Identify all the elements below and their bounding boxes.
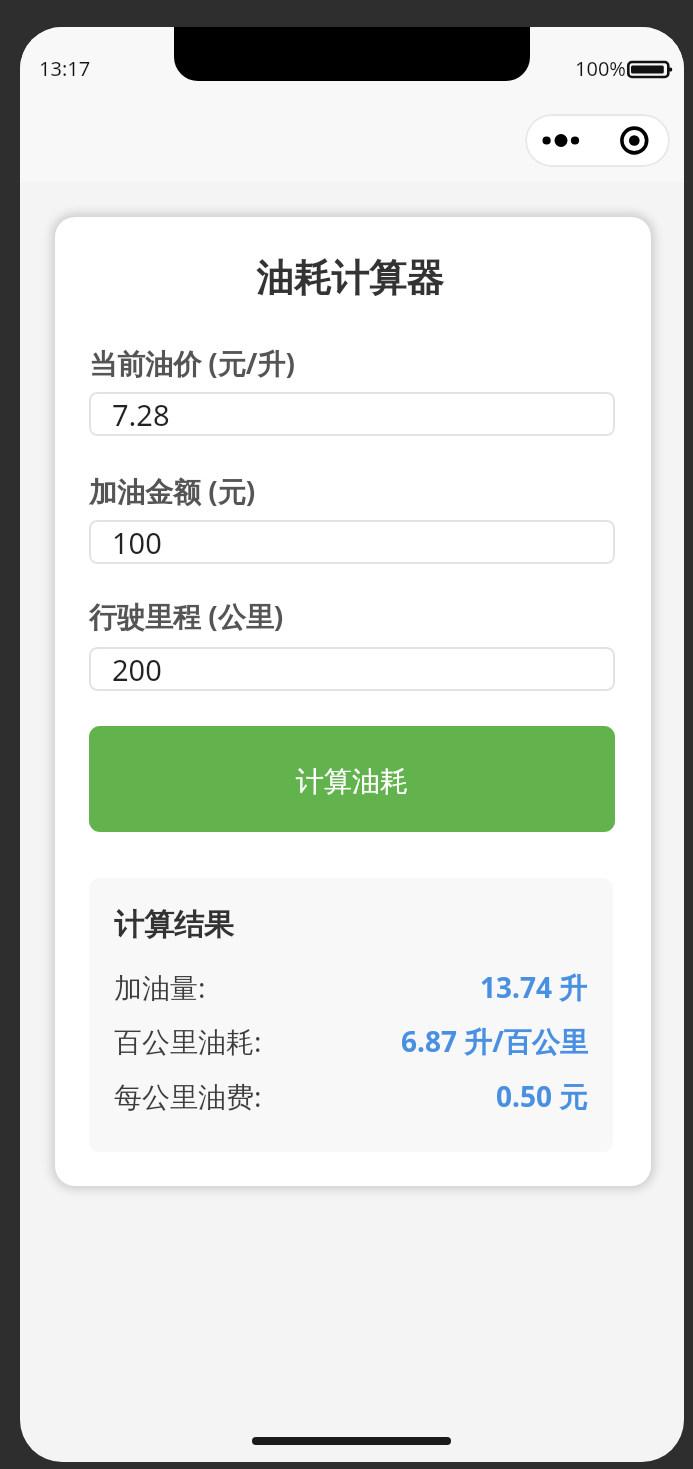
button[interactable]: 计算油耗 — [89, 726, 615, 832]
staticText: 7.28 — [112, 395, 170, 434]
staticText: 100% — [575, 55, 626, 82]
button[interactable]: 7.28 — [89, 392, 615, 436]
staticText: 百公里油耗: — [114, 1022, 262, 1060]
staticText: 100 — [112, 523, 162, 562]
staticText: 13:17 — [39, 55, 91, 82]
staticText: 油耗计算器 — [55, 255, 645, 302]
button[interactable]: More options — [525, 114, 598, 167]
staticText: 6.87 升/百公里 — [401, 1022, 588, 1060]
staticText: 200 — [112, 650, 162, 689]
staticText: 每公里油费: — [114, 1077, 262, 1115]
staticText: 当前油价 (元/升) — [89, 344, 295, 382]
staticText: 加油金额 (元) — [89, 472, 256, 510]
staticText: 行驶里程 (公里) — [89, 597, 284, 635]
button[interactable]: 100 — [89, 520, 615, 564]
staticText: 计算结果 — [114, 906, 234, 944]
staticText: 13.74 升 — [480, 968, 588, 1006]
staticText: 计算油耗 — [296, 764, 408, 799]
button[interactable]: Close mini program — [598, 114, 670, 167]
button[interactable]: 200 — [89, 647, 615, 691]
other: Battery full — [627, 57, 675, 82]
staticText: 加油量: — [114, 968, 206, 1006]
staticText: 0.50 元 — [496, 1077, 588, 1115]
